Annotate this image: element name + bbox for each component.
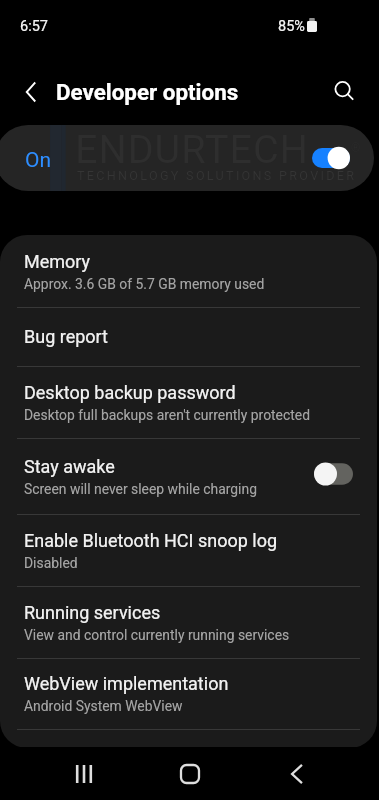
button[interactable]: ENDURTECH [0, 125, 374, 191]
button[interactable]: Memory [0, 235, 377, 307]
staticText: Desktop backup password [24, 382, 236, 403]
staticText: Enable Bluetooth HCI snoop log [24, 530, 278, 551]
button[interactable]: Enable Bluetooth HCI snoop log [0, 514, 377, 586]
staticText: Memory [24, 251, 91, 272]
staticText: Android System WebView [24, 698, 183, 714]
staticText: View and control currently running servi… [24, 627, 290, 643]
staticText: ENDURTECH [75, 126, 309, 172]
staticText: TECHNOLOGY SOLUTIONS PROVIDER [77, 168, 357, 183]
button[interactable]: WebView implementation [0, 658, 377, 729]
button[interactable]: Back [13, 73, 51, 111]
button[interactable]: Back [271, 755, 321, 793]
button[interactable]: Desktop backup password [0, 366, 377, 438]
staticText: 85% [278, 18, 305, 35]
staticText: Bug report [24, 326, 108, 347]
button[interactable]: Stay awake toggle, off [314, 462, 353, 486]
staticText: Stay awake [24, 456, 115, 477]
staticText: Developer options [56, 79, 239, 105]
staticText: WebView implementation [24, 673, 229, 694]
button[interactable]: Recent apps [59, 755, 109, 793]
button[interactable]: Developer options toggle, on [312, 146, 350, 170]
button[interactable]: Search [326, 73, 364, 111]
staticText: Desktop full backups aren't currently pr… [24, 407, 310, 423]
button[interactable]: Stay awake [0, 438, 377, 514]
staticText: 6:57 [20, 18, 48, 35]
button[interactable]: Home [165, 755, 215, 793]
button[interactable]: Bug report [0, 307, 377, 366]
staticText: Screen will never sleep while charging [24, 481, 257, 497]
button[interactable]: Running services [0, 586, 377, 658]
staticText: Disabled [24, 555, 78, 571]
staticText: Approx. 3.6 GB of 5.7 GB memory used [24, 276, 265, 292]
staticText: Running services [24, 602, 161, 623]
staticText: On [25, 148, 52, 173]
